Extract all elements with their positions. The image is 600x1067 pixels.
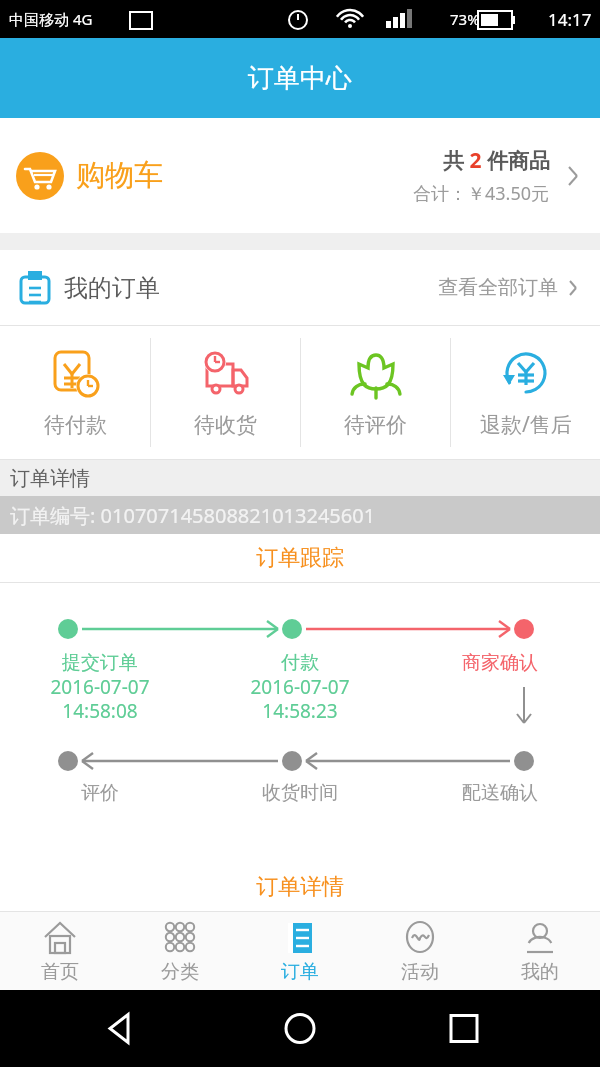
staticText: 中国移动 4G <box>9 9 93 29</box>
staticText: 订单中心 <box>248 62 352 95</box>
staticText: 订单 <box>281 960 319 984</box>
button[interactable]: 订单跟踪 <box>0 534 600 582</box>
staticText: 待收货 <box>194 412 257 438</box>
button[interactable]: 购物车 <box>0 118 600 233</box>
staticText: 待评价 <box>344 412 407 438</box>
button[interactable]: 待付款 <box>0 326 150 459</box>
staticText: 首页 <box>41 960 79 984</box>
staticText: 商家确认 <box>400 651 600 675</box>
staticText: 待付款 <box>44 412 107 438</box>
staticText: 我的 <box>521 960 559 984</box>
staticText: 评价 <box>0 781 200 805</box>
staticText: 73% <box>450 9 480 29</box>
button[interactable]: 退款/售后 <box>451 326 600 459</box>
staticText: 订单详情 <box>256 873 344 901</box>
button[interactable]: 活动 <box>360 912 480 990</box>
staticText: 我的订单 <box>64 273 160 303</box>
button[interactable]: 待收货 <box>151 326 300 459</box>
staticText: 退款/售后 <box>480 410 572 439</box>
staticText: 订单编号: 010707145808821013245601 <box>10 502 376 529</box>
staticText: 14:17 <box>548 8 592 31</box>
button[interactable]: 首页 <box>0 912 120 990</box>
button[interactable]: 待评价 <box>301 326 450 459</box>
staticText: 订单跟踪 <box>256 544 344 572</box>
staticText: 共 2 件商品 <box>443 146 550 175</box>
button[interactable]: 我的订单 <box>0 250 600 325</box>
staticText: 提交订单 2016-07-07 14:58:08 <box>0 651 200 723</box>
staticText: 合计：￥43.50元 <box>413 181 550 206</box>
staticText: 查看全部订单 <box>438 275 558 300</box>
staticText: 收货时间 <box>200 781 400 805</box>
staticText: 配送确认 <box>400 781 600 805</box>
button[interactable]: 分类 <box>120 912 240 990</box>
other: Open cart <box>562 165 584 187</box>
staticText: 分类 <box>161 960 199 984</box>
staticText: 订单详情 <box>10 466 90 491</box>
staticText: 付款 2016-07-07 14:58:23 <box>200 651 400 723</box>
button[interactable]: 我的 <box>480 912 600 990</box>
button[interactable]: 订单详情 <box>0 863 600 911</box>
staticText: 购物车 <box>76 157 163 194</box>
staticText: 活动 <box>401 960 439 984</box>
button[interactable]: 订单 <box>240 912 360 990</box>
